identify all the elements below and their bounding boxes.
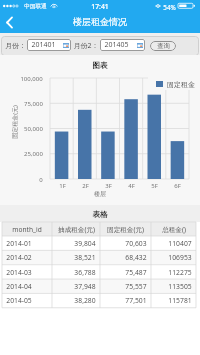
button[interactable]: Back [0,12,18,33]
staticText: 月份2： [73,41,99,51]
staticText: 25,000 [24,150,43,158]
staticText: 楼层租金情况 [0,16,200,27]
staticText: 100,000 [20,75,43,83]
staticText: 68,432 [125,253,147,262]
button[interactable]: 2014-04 [2,279,196,293]
staticText: 50,000 [24,125,43,133]
staticText: 110407 [168,239,192,248]
staticText: 0 [39,176,43,184]
staticText: 固定租金(元) [107,225,144,234]
button[interactable]: 201405 [100,39,145,51]
staticText: 固定租金 [167,80,195,89]
staticText: 201401 [31,40,56,50]
staticText: 2014-03 [6,268,32,277]
staticText: 1F [59,182,66,190]
button[interactable]: 2014-02 [2,250,196,264]
staticText: 图表 [0,61,200,70]
staticText: 3F [105,182,112,190]
staticText: 固定租金(元) [11,105,19,139]
staticText: 112275 [168,268,192,277]
staticText: 2F [82,182,89,190]
staticText: 38,280 [74,296,96,305]
staticText: 113505 [168,282,192,291]
staticText: 总租金() [162,225,186,234]
button[interactable]: 2014-01 [2,236,196,250]
staticText: 表格 [0,210,200,219]
staticText: month_id [12,225,42,234]
staticText: 70,603 [125,239,147,248]
staticText: 月份： [5,41,26,50]
staticText: 36,788 [74,268,96,277]
staticText: 39,804 [74,239,96,248]
staticText: 2014-02 [6,253,32,262]
staticText: 17:41 [91,2,109,11]
staticText: 5F [151,182,158,190]
staticText: 115781 [168,296,192,305]
staticText: 2014-01 [6,239,32,248]
staticText: 75,487 [125,268,147,277]
staticText: 6F [174,182,181,190]
staticText: 2014-04 [6,282,32,291]
staticText: 楼层 [94,190,106,198]
button[interactable]: 201401 [27,39,71,51]
staticText: 106953 [168,253,192,262]
staticText: 2014-05 [6,296,32,305]
staticText: 75,557 [125,282,147,291]
staticText: 抽成租金(元) [58,225,95,234]
staticText: 75,000 [24,100,43,108]
staticText: 中国联通 [24,3,47,10]
staticText: 38,521 [74,253,96,262]
staticText: 201405 [104,40,129,50]
button[interactable]: 2014-03 [2,265,196,279]
button[interactable]: 查询 [150,41,176,51]
staticText: 查询 [157,42,170,50]
staticText: 37,948 [74,282,96,291]
button[interactable]: 2014-05 [2,293,196,307]
staticText: 54% [163,3,176,12]
staticText: 77,501 [125,296,147,305]
staticText: 4F [128,182,135,190]
